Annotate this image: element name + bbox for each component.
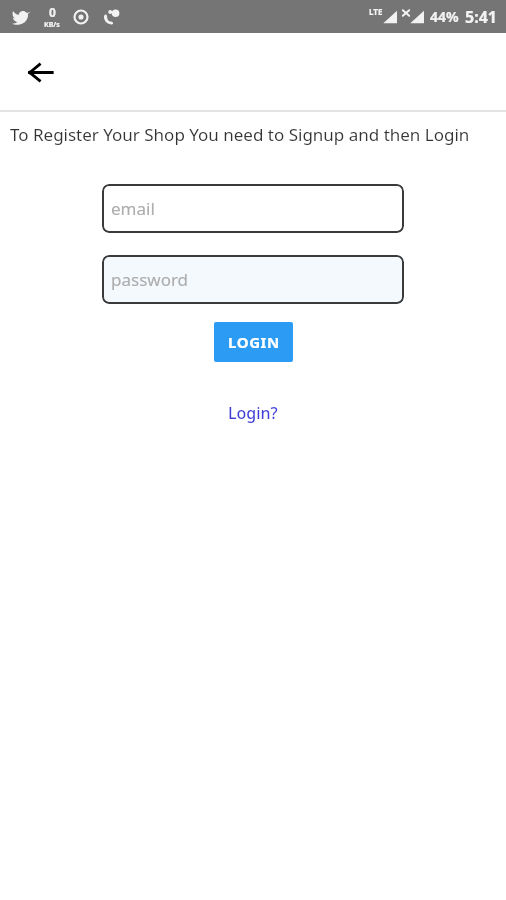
staticText: LTE — [369, 6, 383, 17]
staticText: password — [111, 268, 189, 291]
staticText: LOGIN — [228, 332, 280, 352]
staticText: Login? — [228, 402, 278, 424]
staticText: 0 — [49, 4, 56, 20]
button[interactable]: Back — [16, 48, 64, 96]
button[interactable]: Login? — [218, 398, 288, 428]
button[interactable]: email — [102, 184, 404, 233]
staticText: email — [111, 197, 155, 220]
staticText: To Register Your Shop You need to Signup… — [10, 123, 492, 146]
button[interactable]: LOGIN — [214, 322, 293, 362]
staticText: KB/s — [44, 20, 60, 30]
button[interactable]: password — [102, 255, 404, 304]
staticText: 44% — [430, 7, 459, 26]
staticText: 5:41 — [465, 6, 497, 28]
